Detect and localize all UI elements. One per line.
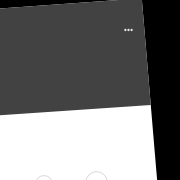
button[interactable]: Profile two [86, 171, 108, 180]
button[interactable]: Profile one [35, 175, 53, 180]
button[interactable]: More options [117, 18, 140, 41]
